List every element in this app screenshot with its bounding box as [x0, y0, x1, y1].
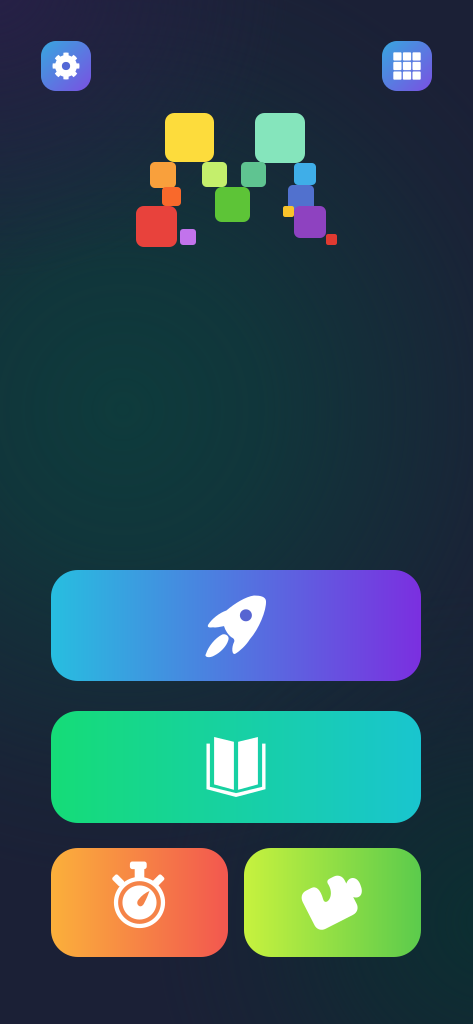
button[interactable]: Launch	[51, 570, 421, 681]
button[interactable]: Library	[51, 711, 421, 823]
button[interactable]: Settings	[41, 41, 91, 91]
button[interactable]: All apps	[382, 41, 432, 91]
button[interactable]: Timer	[51, 848, 228, 957]
button[interactable]: Puzzles	[244, 848, 421, 957]
